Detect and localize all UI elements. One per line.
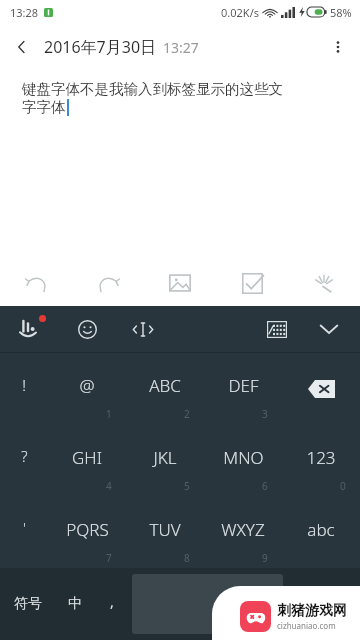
button[interactable]: PQRS — [48, 496, 126, 568]
button[interactable]: Hide keyboard — [308, 308, 350, 350]
button[interactable]: 123 — [282, 424, 360, 496]
staticText: 中 — [68, 595, 82, 613]
button[interactable]: Redo — [72, 260, 144, 306]
staticText: DEF — [228, 374, 259, 397]
button[interactable]: Clear formatting — [288, 260, 360, 306]
staticText: TUV — [149, 518, 181, 541]
staticText: 13:27 — [163, 38, 199, 57]
staticText: 2 — [184, 407, 190, 421]
staticText: 2016年7月30日 — [44, 36, 157, 58]
button[interactable]: WXYZ — [204, 496, 282, 568]
staticText: MNO — [223, 446, 264, 469]
staticText: 0.02K/s — [221, 5, 259, 20]
staticText: 6 — [262, 479, 268, 493]
staticText: GHI — [72, 446, 102, 469]
staticText: 3 — [262, 407, 268, 421]
staticText: PQRS — [66, 518, 109, 541]
button[interactable]: JKL — [126, 424, 204, 496]
button[interactable]: abc — [282, 496, 360, 568]
button[interactable]: Checklist — [216, 260, 288, 306]
button[interactable]: Insert image — [144, 260, 216, 306]
button[interactable]: , — [94, 568, 129, 640]
button[interactable]: Space — [132, 574, 283, 634]
button[interactable]: ' — [0, 496, 48, 568]
button[interactable]: ABC — [126, 353, 204, 424]
button[interactable]: ? — [0, 424, 48, 496]
button[interactable]: More options — [316, 25, 360, 69]
staticText: , — [110, 592, 114, 611]
staticText: 0 — [340, 479, 346, 493]
staticText: 9 — [262, 551, 268, 565]
button[interactable]: ! — [0, 353, 48, 424]
staticText: ! — [22, 375, 26, 395]
staticText: ' — [23, 518, 26, 538]
staticText: 刺猪游戏网 — [277, 602, 347, 620]
button[interactable]: 键盘字体不是我输入到标签显示的这些文 — [22, 80, 342, 260]
button[interactable]: @ — [48, 353, 126, 424]
button[interactable]: DEF — [204, 353, 282, 424]
button[interactable]: GHI — [48, 424, 126, 496]
staticText: 13:28 — [10, 5, 39, 20]
button[interactable]: TUV — [126, 496, 204, 568]
button[interactable]: 符号 — [0, 568, 56, 640]
button[interactable]: Delete — [282, 353, 360, 424]
staticText: 5 — [184, 479, 190, 493]
staticText: ? — [21, 446, 28, 466]
staticText: cizhuaniao.com — [277, 620, 336, 631]
button[interactable]: Handwriting input — [8, 308, 50, 350]
staticText: 7 — [106, 551, 112, 565]
button[interactable]: Keyboard settings — [256, 308, 298, 350]
staticText: 键盘字体不是我输入到标签显示的这些文 — [22, 80, 283, 98]
button[interactable]: MNO — [204, 424, 282, 496]
button[interactable]: Enter — [286, 568, 360, 640]
button[interactable]: Back — [0, 25, 44, 69]
staticText: ABC — [149, 374, 181, 397]
staticText: 58% — [330, 5, 352, 20]
staticText: 123 — [306, 446, 336, 469]
staticText: 字字体 — [22, 98, 66, 116]
button[interactable]: Undo — [0, 260, 72, 306]
staticText: abc — [307, 518, 335, 541]
staticText: 8 — [184, 551, 190, 565]
staticText: JKL — [153, 446, 177, 469]
staticText: 符号 — [14, 595, 42, 613]
staticText: 4 — [106, 479, 112, 493]
staticText: 1 — [106, 407, 112, 421]
button[interactable]: Emoji — [66, 308, 108, 350]
button[interactable]: 中 — [56, 568, 94, 640]
staticText: WXYZ — [221, 518, 265, 541]
button[interactable]: Move cursor — [122, 308, 164, 350]
staticText: @ — [79, 374, 95, 397]
